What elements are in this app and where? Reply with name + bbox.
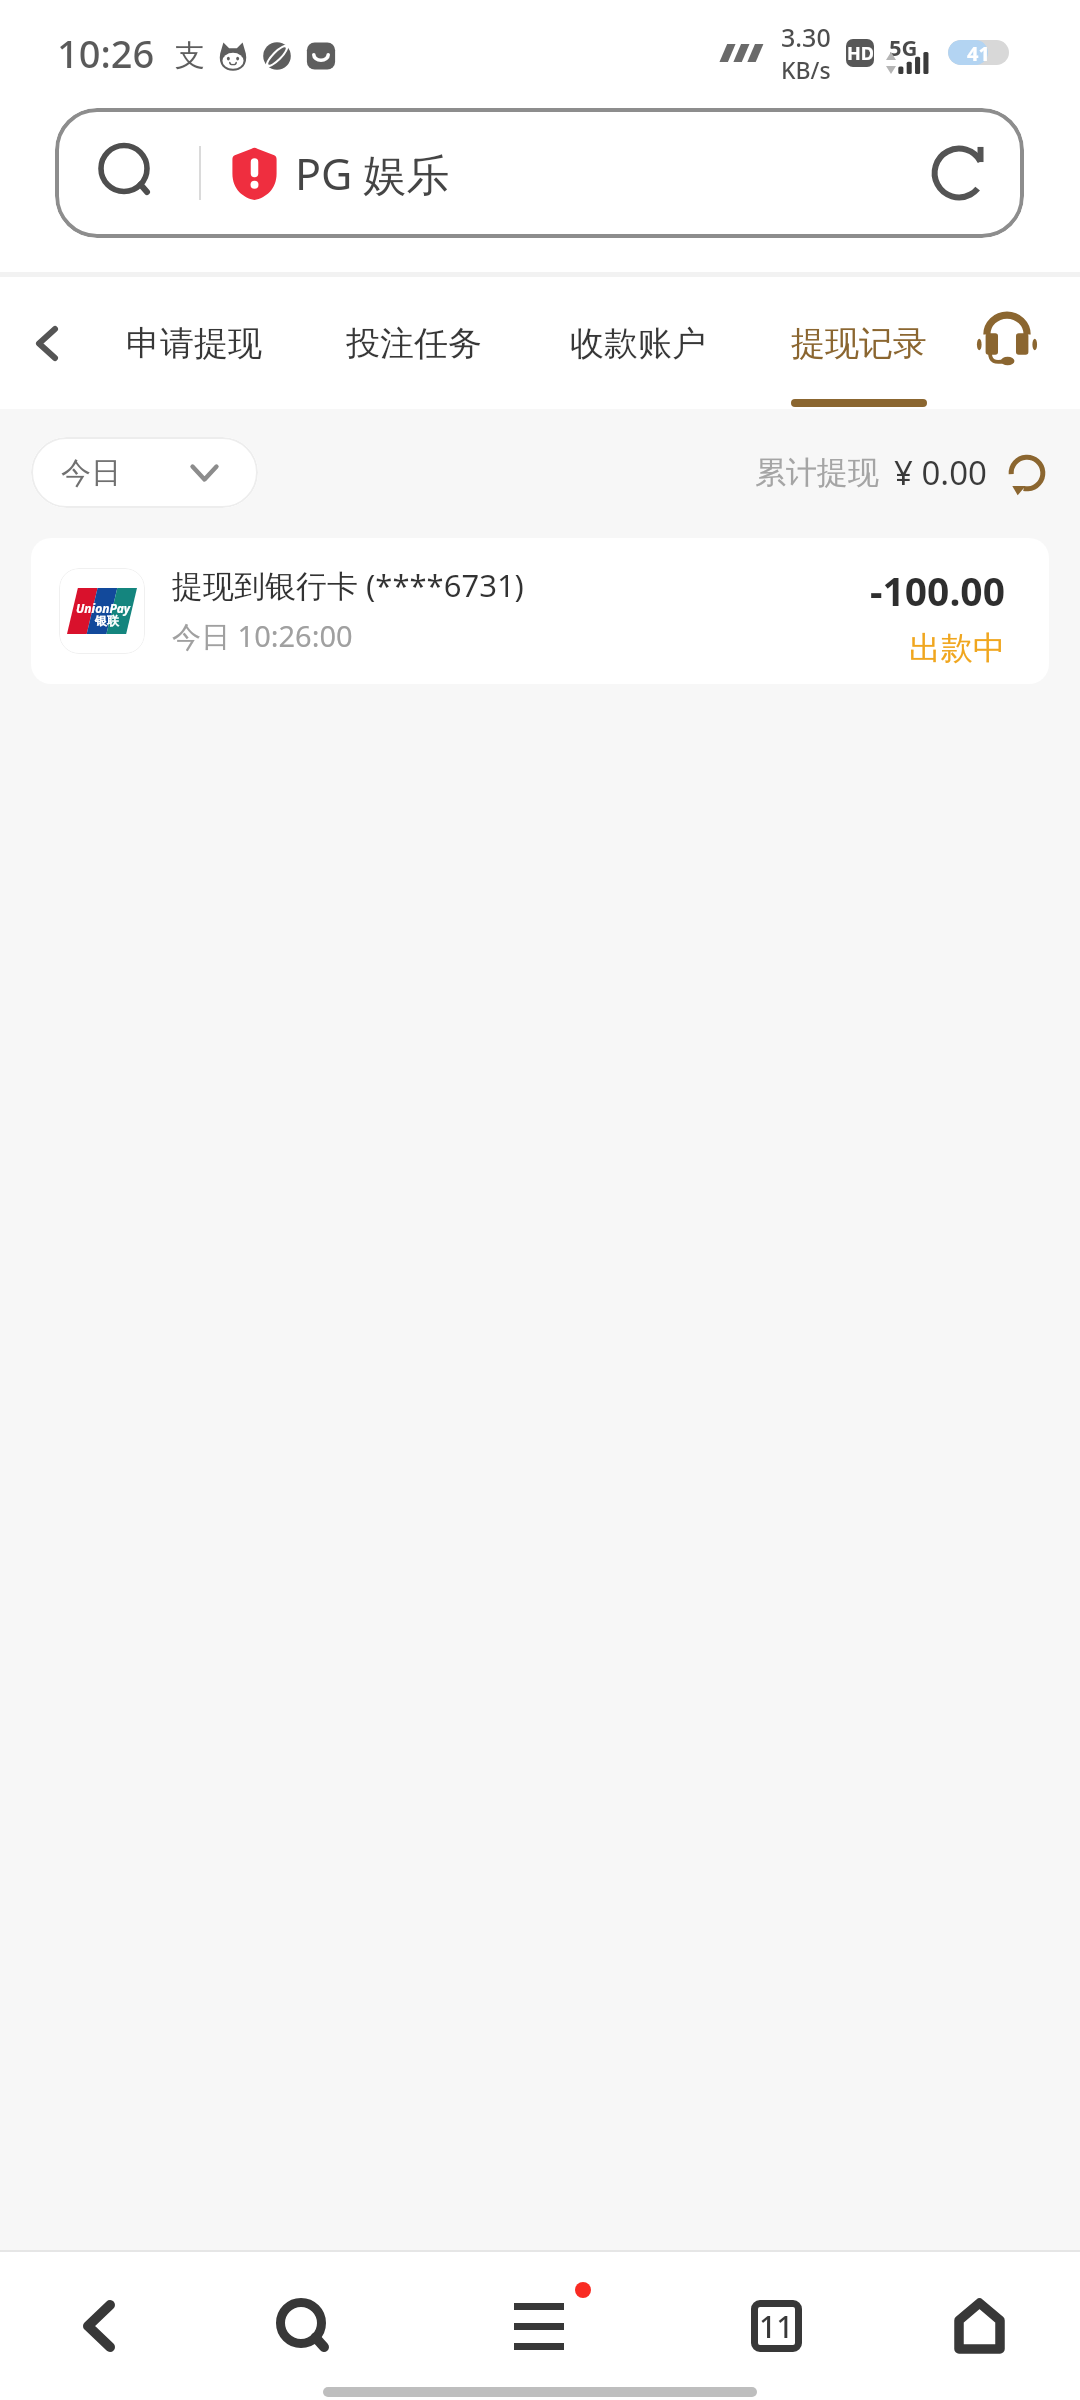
button[interactable]: Refresh [1004, 450, 1050, 496]
staticText: 支 [175, 37, 205, 75]
button[interactable]: Customer service [976, 277, 1080, 409]
button[interactable]: 提现记录 [763, 277, 955, 409]
staticText: 投注任务 [346, 322, 482, 365]
staticText: 10:26 [57, 27, 155, 79]
staticText: HD [847, 41, 874, 66]
button[interactable]: Menu [448, 2262, 628, 2390]
staticText: PG 娱乐 [295, 144, 450, 203]
staticText: 今日 [61, 454, 121, 492]
staticText: 出款中 [909, 628, 1005, 668]
staticText: 累计提现 [755, 453, 879, 492]
staticText: ¥ 0.00 [894, 450, 987, 495]
staticText: 提现记录 [791, 322, 927, 365]
button[interactable]: 申请提现 [98, 277, 290, 409]
staticText: 3.30 [781, 20, 831, 54]
staticText: 今日 10:26:00 [172, 616, 353, 656]
button[interactable]: Home [889, 2262, 1069, 2390]
staticText: 41 [967, 40, 990, 65]
button[interactable]: Search [212, 2262, 392, 2390]
button[interactable]: Back [9, 2262, 189, 2390]
button[interactable]: 今日 [31, 437, 258, 508]
staticText: 收款账户 [570, 322, 706, 365]
button[interactable]: 收款账户 [542, 277, 734, 409]
staticText: 5G [889, 32, 918, 62]
staticText: KB/s [781, 54, 831, 85]
button[interactable]: Tabs [686, 2262, 866, 2390]
staticText: 银联 [95, 613, 119, 628]
staticText: -100.00 [870, 564, 1005, 617]
staticText: 提现到银行卡 (****6731) [172, 564, 524, 606]
button[interactable]: 投注任务 [318, 277, 510, 409]
button[interactable]: PG 娱乐 [55, 108, 1024, 238]
button[interactable]: Back [0, 277, 93, 409]
staticText: 申请提现 [126, 322, 262, 365]
staticText: 11 [759, 2306, 794, 2347]
button[interactable]: UnionPay [31, 538, 1049, 684]
staticText: UnionPay [76, 600, 131, 616]
